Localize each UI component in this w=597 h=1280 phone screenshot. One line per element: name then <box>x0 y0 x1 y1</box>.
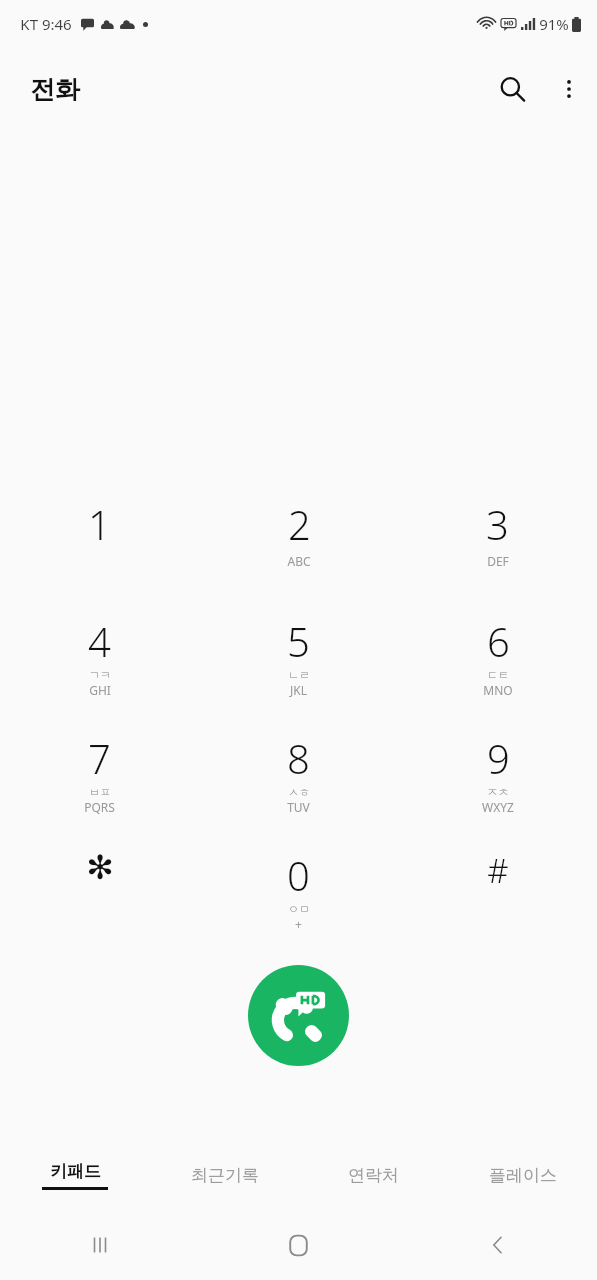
staticText: # <box>487 848 509 893</box>
staticText: 9 <box>487 731 510 785</box>
button[interactable]: 1 <box>0 485 199 602</box>
button[interactable]: # <box>398 836 597 953</box>
staticText: JKL <box>290 682 307 698</box>
staticText: PQRS <box>84 799 115 815</box>
staticText: ㄱㅋ <box>89 668 111 682</box>
button[interactable]: Recents <box>0 1210 199 1280</box>
staticText: + <box>295 916 302 932</box>
staticText: 1 <box>88 497 111 551</box>
staticText: ㅅㅎ <box>288 785 310 799</box>
button[interactable]: 8 <box>199 719 398 836</box>
staticText: GHI <box>89 682 111 698</box>
staticText: 7 <box>88 731 111 785</box>
staticText: 4 <box>88 614 111 668</box>
staticText: WXYZ <box>482 799 514 815</box>
button[interactable]: Call <box>248 965 349 1066</box>
staticText: 5 <box>287 614 310 668</box>
button[interactable]: 키패드 <box>0 1140 150 1210</box>
staticText: TUV <box>287 799 310 815</box>
staticText: ㅈㅊ <box>487 785 509 799</box>
button[interactable]: Back <box>398 1210 597 1280</box>
staticText: 6 <box>487 614 510 668</box>
staticText: ㅇㅁ <box>288 902 310 916</box>
button[interactable]: Home <box>199 1210 398 1280</box>
button[interactable]: 3 <box>398 485 597 602</box>
button[interactable]: 5 <box>199 602 398 719</box>
staticText: DEF <box>487 553 509 569</box>
button[interactable]: 최근기록 <box>150 1140 299 1210</box>
staticText: 2 <box>288 497 311 551</box>
staticText: 플레이스 <box>489 1165 557 1186</box>
button[interactable]: 6 <box>398 602 597 719</box>
button[interactable]: 2 <box>199 485 398 602</box>
button[interactable]: 전화 <box>30 74 80 105</box>
button[interactable]: ✻ <box>0 836 199 953</box>
button[interactable]: 플레이스 <box>448 1140 597 1210</box>
button[interactable]: Search <box>483 60 541 118</box>
staticText: 전화 <box>30 74 80 105</box>
button[interactable]: 9 <box>398 719 597 836</box>
staticText: 연락처 <box>348 1165 399 1186</box>
staticText: ㄴㄹ <box>288 668 310 682</box>
button[interactable]: 연락처 <box>299 1140 448 1210</box>
button[interactable]: 7 <box>0 719 199 836</box>
staticText: KT 9:46 <box>20 14 72 34</box>
staticText: ㄷㅌ <box>487 668 509 682</box>
staticText: 0 <box>287 848 310 902</box>
staticText: ABC <box>287 553 311 569</box>
staticText: 최근기록 <box>191 1165 259 1186</box>
button[interactable]: 4 <box>0 602 199 719</box>
staticText: MNO <box>483 682 513 698</box>
staticText: 3 <box>486 497 509 551</box>
staticText: 키패드 <box>50 1161 101 1182</box>
staticText: ㅂㅍ <box>89 785 111 799</box>
staticText: ✻ <box>86 848 114 886</box>
staticText: 8 <box>287 731 310 785</box>
staticText: 91% <box>539 14 569 34</box>
button[interactable]: More options <box>541 61 597 117</box>
button[interactable]: 0 <box>199 836 398 953</box>
